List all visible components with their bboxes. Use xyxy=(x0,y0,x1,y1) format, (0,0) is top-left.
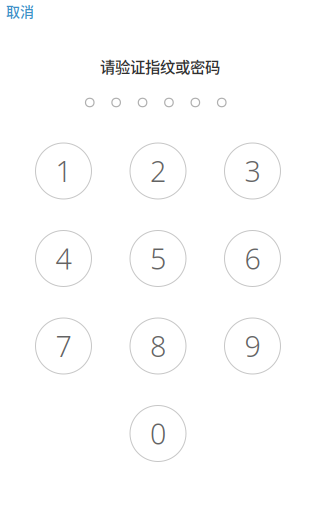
staticText: 取消 xyxy=(6,1,34,21)
button[interactable]: 4 xyxy=(35,230,91,286)
button[interactable]: 1 xyxy=(35,143,91,199)
staticText: 请验证指纹或密码 xyxy=(100,55,220,77)
staticText: 6 xyxy=(244,239,260,278)
staticText: 7 xyxy=(55,326,71,365)
staticText: 5 xyxy=(150,239,166,278)
staticText: 9 xyxy=(244,326,260,365)
button[interactable]: 5 xyxy=(130,230,186,286)
button[interactable]: 0 xyxy=(130,405,186,461)
button[interactable]: 8 xyxy=(130,318,186,374)
staticText: 3 xyxy=(244,151,260,190)
staticText: 8 xyxy=(150,326,166,365)
button[interactable]: 6 xyxy=(224,230,280,286)
button[interactable]: 7 xyxy=(35,318,91,374)
staticText: 1 xyxy=(55,151,71,190)
staticText: 4 xyxy=(55,239,71,278)
staticText: 2 xyxy=(150,151,166,190)
button[interactable]: 取消 xyxy=(6,4,34,18)
staticText: 0 xyxy=(150,414,166,453)
button[interactable]: 3 xyxy=(224,143,280,199)
button[interactable]: 2 xyxy=(130,143,186,199)
button[interactable]: 9 xyxy=(224,318,280,374)
